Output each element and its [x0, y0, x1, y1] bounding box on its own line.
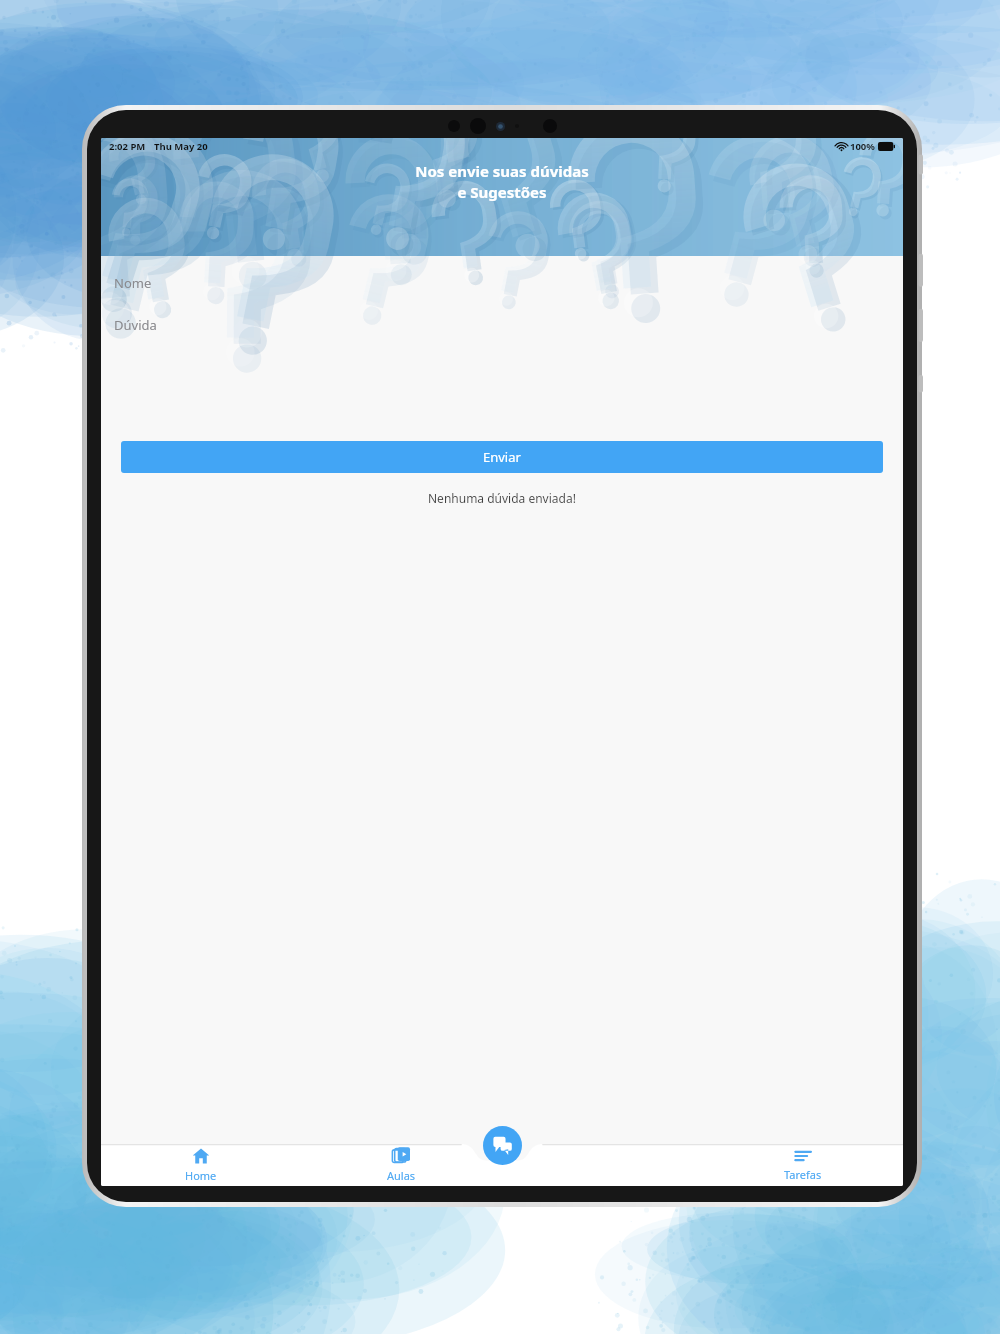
staticText: 100% [850, 140, 875, 153]
staticText: Dúvida [114, 316, 157, 334]
button[interactable]: Nome [101, 268, 903, 298]
staticText: Aulas [387, 1168, 416, 1183]
button[interactable]: Aulas [301, 1144, 501, 1186]
staticText: Tarefas [784, 1167, 822, 1182]
staticText: e Sugestões [457, 182, 547, 202]
button[interactable]: Dúvidas e sugestões [483, 1126, 522, 1165]
staticText: Nome [114, 274, 152, 292]
staticText: Thu May 20 [154, 140, 208, 153]
button[interactable]: Home [101, 1144, 301, 1186]
button[interactable]: Dúvida [101, 310, 903, 340]
staticText: 2:02 PM [109, 140, 146, 153]
staticText: Nenhuma dúvida enviada! [428, 490, 576, 506]
button[interactable]: Enviar [121, 441, 883, 473]
staticText: Enviar [483, 448, 521, 466]
staticText: Nos envie suas dúvidas [415, 161, 589, 181]
staticText: Home [185, 1168, 217, 1183]
button[interactable]: Tarefas [702, 1144, 903, 1186]
